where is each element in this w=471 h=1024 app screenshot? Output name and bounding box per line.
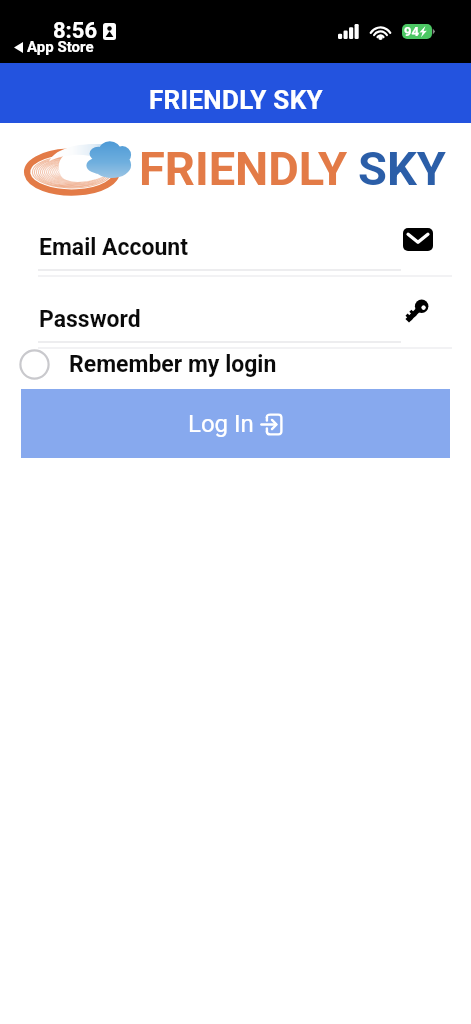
staticText: FRIENDLY SKY <box>149 85 323 115</box>
staticText: SKY <box>358 141 446 196</box>
staticText: 94 <box>404 24 419 39</box>
staticText: Password <box>39 306 141 333</box>
button[interactable]: Password <box>402 296 432 326</box>
button[interactable]: Email Account <box>39 234 189 261</box>
staticText: FRIENDLY <box>139 141 348 196</box>
button[interactable]: Password <box>39 306 141 333</box>
button[interactable]: Remember my login <box>10 345 310 383</box>
staticText: Email Account <box>39 234 189 261</box>
staticText: Log In <box>188 410 254 438</box>
staticText: 8:56 <box>53 18 98 44</box>
staticText: App Store <box>27 38 94 56</box>
button[interactable]: Log In <box>21 389 450 458</box>
button[interactable]: Email <box>403 228 433 251</box>
staticText: Remember my login <box>69 351 277 378</box>
